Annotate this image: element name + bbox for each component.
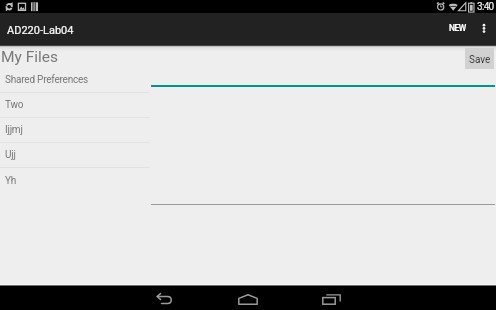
staticText: Shared Preferences xyxy=(5,74,89,86)
button[interactable]: Back xyxy=(144,287,185,310)
button[interactable]: Save xyxy=(465,48,494,69)
staticText: My Files xyxy=(1,48,59,66)
button[interactable]: Yh xyxy=(0,168,150,193)
button[interactable]: NEW xyxy=(441,13,474,45)
button[interactable]: Ujj xyxy=(0,143,150,168)
button[interactable]: Ijjmj xyxy=(0,118,150,143)
button[interactable]: Recent apps xyxy=(311,287,352,310)
staticText: AD220-Lab04 xyxy=(7,24,74,37)
button[interactable]: More options xyxy=(473,13,494,45)
staticText: Ijjmj xyxy=(5,124,23,136)
staticText: Two xyxy=(5,99,24,111)
staticText: Ujj xyxy=(5,149,16,161)
button[interactable]: Home xyxy=(227,287,268,310)
button[interactable]: Two xyxy=(0,93,150,118)
staticText: Save xyxy=(469,54,491,66)
button[interactable]: Shared Preferences xyxy=(0,68,150,93)
staticText: Yh xyxy=(5,175,17,187)
staticText: 3:40 xyxy=(477,1,494,13)
staticText: NEW xyxy=(449,23,466,33)
